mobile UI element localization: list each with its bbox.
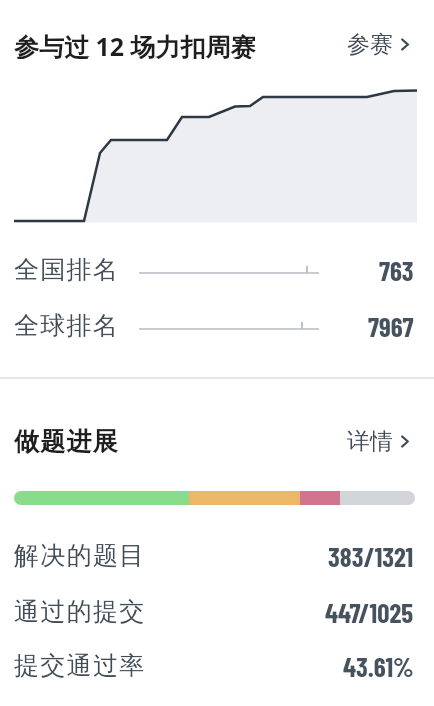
staticText: 参与过 12 场力扣周赛 [14,29,256,59]
button[interactable]: 全国排名 [14,254,414,284]
staticText: 763 [379,254,414,284]
button[interactable]: 全球排名 [14,310,414,340]
staticText: 解决的题目 [14,540,146,570]
staticText: 43.61% [343,650,414,680]
button[interactable]: 详情 [347,427,414,456]
staticText: 7967 [368,310,414,340]
button[interactable]: 通过的提交 [14,596,414,626]
staticText: 通过的提交 [14,596,146,626]
button[interactable]: 提交通过率 [14,650,414,680]
button[interactable]: 解决的题目 [14,540,414,570]
staticText: 做题进展 [14,426,119,456]
staticText: 参赛 [347,30,393,59]
staticText: 提交通过率 [14,650,146,680]
staticText: 详情 [347,427,393,456]
staticText: 447/1025 [325,596,414,626]
staticText: 383/1321 [328,540,414,570]
staticText: 全球排名 [14,310,120,340]
staticText: 全国排名 [14,254,120,284]
button[interactable]: 参赛 [347,30,414,59]
